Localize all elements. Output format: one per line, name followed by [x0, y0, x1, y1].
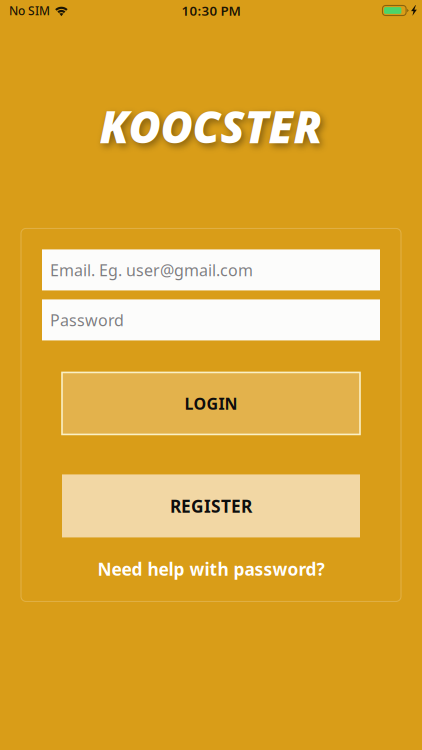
staticText: LOGIN	[184, 393, 237, 414]
staticText: 10:30 PM	[181, 2, 240, 19]
staticText: Need help with password?	[97, 557, 324, 580]
staticText: Password	[50, 309, 124, 330]
staticText: KOOCSTER	[99, 97, 322, 155]
staticText: Email. Eg. user@gmail.com	[50, 259, 253, 280]
staticText: REGISTER	[170, 494, 252, 517]
button[interactable]: REGISTER	[62, 474, 360, 537]
button[interactable]: Email. Eg. user@gmail.com	[42, 249, 380, 290]
button[interactable]: LOGIN	[62, 372, 360, 434]
button[interactable]: Need help with password?	[89, 554, 332, 583]
staticText: No SIM	[9, 2, 50, 18]
button[interactable]: Password	[42, 299, 380, 340]
